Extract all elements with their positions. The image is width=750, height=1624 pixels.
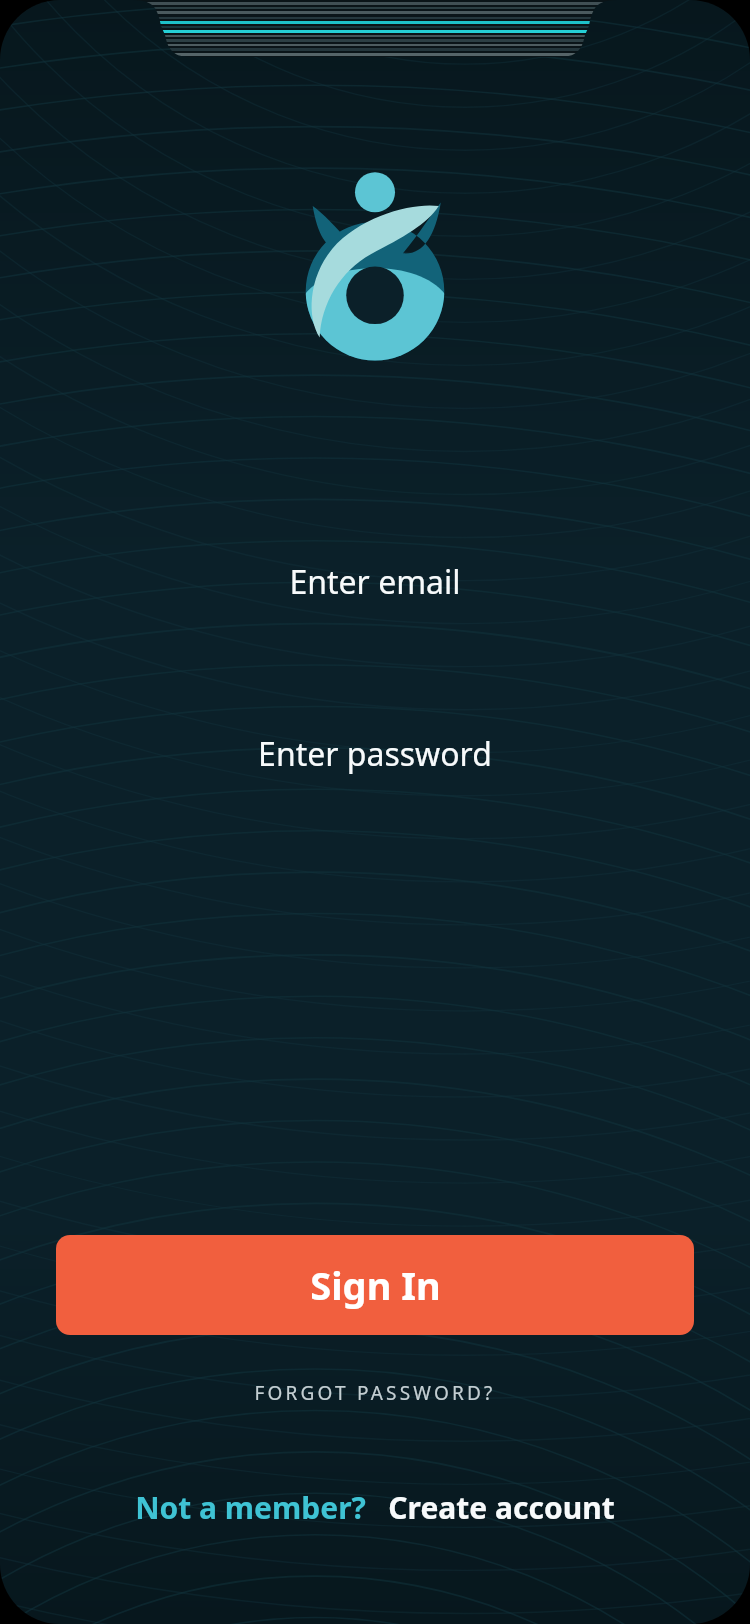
other: App logo (305, 170, 445, 355)
button[interactable]: FORGOT PASSWORD? (254, 1371, 496, 1415)
staticText: Enter password (258, 732, 492, 776)
button[interactable]: Not a member? (135, 1487, 366, 1528)
button[interactable]: Create account (388, 1487, 615, 1528)
staticText: Enter email (289, 560, 461, 604)
button[interactable]: Enter password (0, 712, 750, 796)
staticText: FORGOT PASSWORD? (254, 1380, 496, 1406)
button[interactable]: Sign In (56, 1235, 694, 1335)
staticText: Create account (388, 1487, 615, 1528)
button[interactable]: Enter email (0, 540, 750, 624)
staticText: Not a member? (135, 1487, 366, 1528)
staticText: Sign In (310, 1259, 441, 1311)
